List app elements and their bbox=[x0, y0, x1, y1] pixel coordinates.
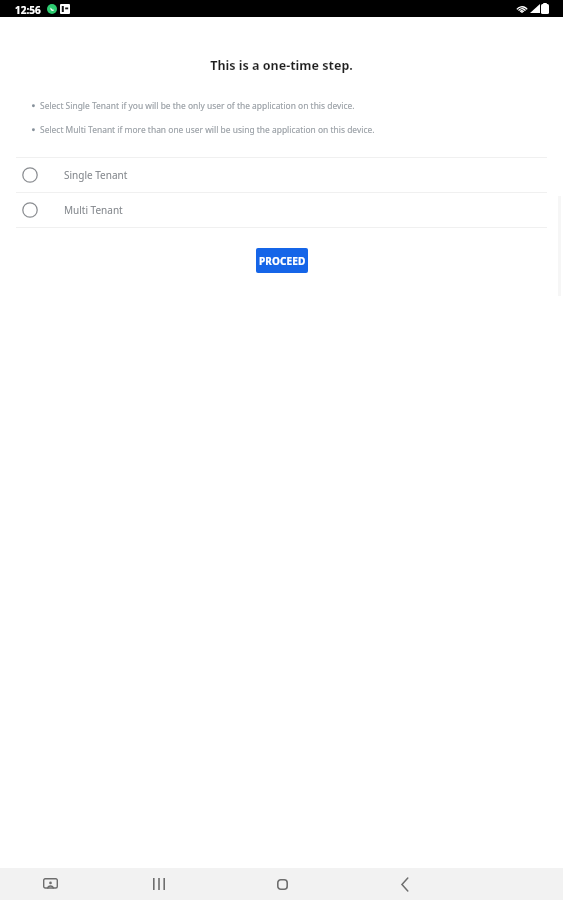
staticText: PROCEED bbox=[259, 254, 306, 268]
button[interactable]: Home bbox=[261, 868, 303, 900]
button[interactable]: Single Tenant bbox=[0, 158, 563, 192]
button[interactable]: Back bbox=[384, 868, 426, 900]
staticText: Select Single Tenant if you will be the … bbox=[40, 100, 355, 112]
button[interactable]: Screenshot bbox=[29, 868, 71, 900]
button[interactable]: PROCEED bbox=[256, 248, 308, 273]
staticText: Single Tenant bbox=[64, 168, 128, 182]
staticText: Multi Tenant bbox=[64, 203, 123, 217]
button[interactable]: Multi Tenant bbox=[0, 193, 563, 227]
staticText: 12:56 bbox=[15, 3, 41, 17]
button[interactable]: Recent apps bbox=[138, 868, 180, 900]
staticText: Select Multi Tenant if more than one use… bbox=[40, 124, 375, 136]
staticText: This is a one-time step. bbox=[0, 57, 563, 74]
